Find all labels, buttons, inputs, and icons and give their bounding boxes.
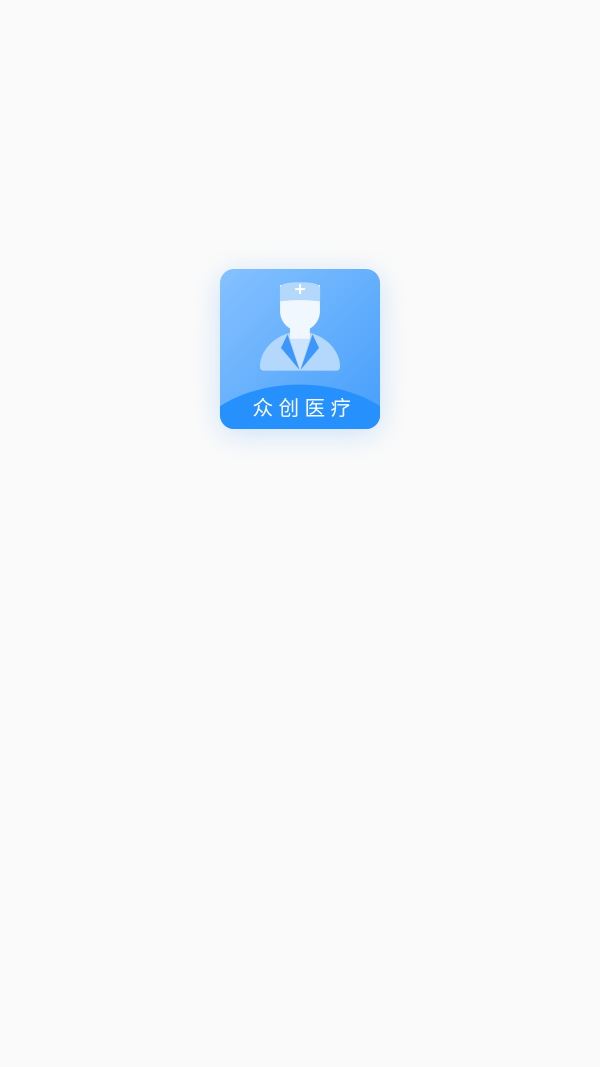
staticText: 众创医疗 xyxy=(252,392,351,421)
